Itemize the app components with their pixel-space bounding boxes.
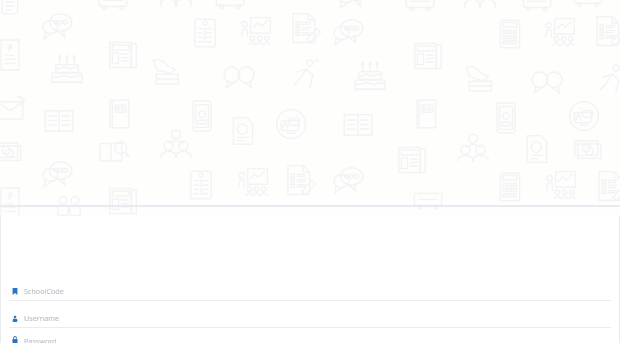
button[interactable]: SchoolCode [1, 282, 619, 309]
staticText: SchoolCode [24, 286, 64, 296]
staticText: Password [24, 336, 57, 343]
staticText: Username [24, 313, 59, 323]
button[interactable]: Password [1, 336, 619, 343]
button[interactable]: Username [1, 309, 619, 336]
